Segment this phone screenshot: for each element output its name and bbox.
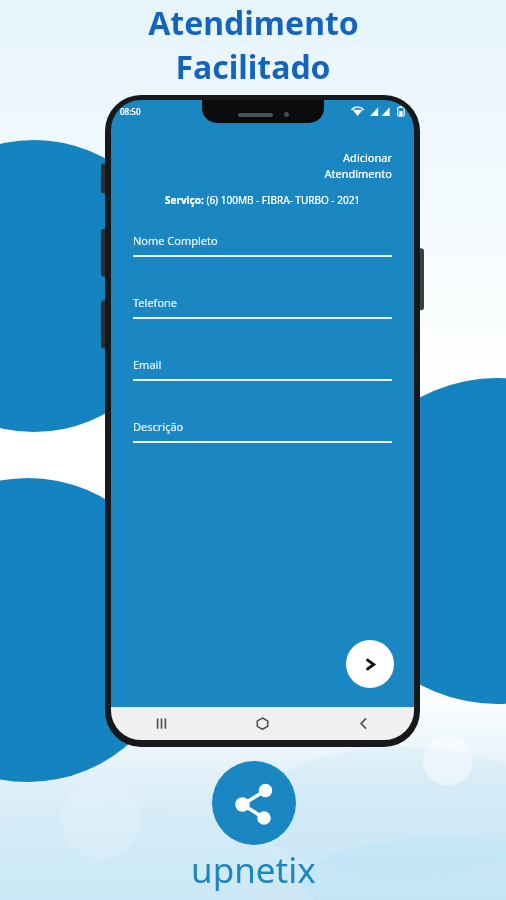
staticText: Facilitado [175, 45, 331, 89]
button[interactable]: Next [346, 640, 394, 688]
other: Upnetix logo [212, 761, 296, 845]
staticText: upnetix [191, 846, 316, 894]
staticText: Descrição [133, 419, 184, 434]
button[interactable]: Telefone [133, 295, 392, 319]
button[interactable]: Recent apps [111, 707, 212, 740]
staticText: Email [133, 357, 162, 372]
button[interactable]: Back [313, 707, 414, 740]
staticText: Nome Completo [133, 233, 218, 248]
button[interactable]: Descrição [133, 419, 392, 443]
staticText: Atendimento [148, 1, 359, 45]
button[interactable]: Nome Completo [133, 233, 392, 257]
staticText: Adicionar Atendimento [111, 150, 392, 182]
button[interactable]: Email [133, 357, 392, 381]
staticText: Telefone [133, 295, 178, 310]
staticText: Serviço: (6) 100MB - FIBRA- TURBO - 2021 [119, 193, 406, 207]
button[interactable]: Home [212, 707, 313, 740]
staticText: 08:50 [120, 106, 141, 117]
